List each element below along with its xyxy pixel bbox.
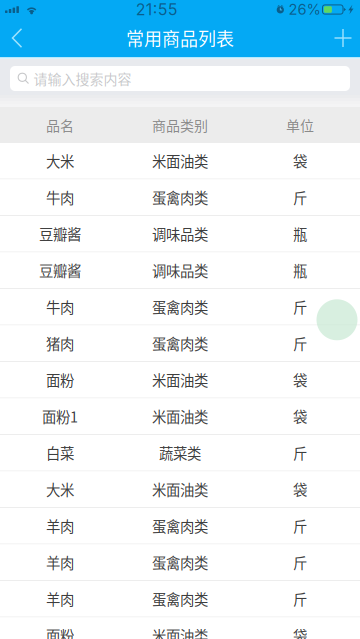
staticText: 蔬菜类: [159, 442, 201, 463]
staticText: 牛肉: [46, 187, 74, 208]
button[interactable]: 请输入搜索内容: [0, 59, 360, 95]
staticText: 蛋禽肉类: [152, 515, 208, 536]
staticText: 袋: [293, 369, 307, 390]
button[interactable]: 添加: [316, 19, 360, 56]
staticText: 袋: [293, 406, 307, 427]
staticText: 斤: [293, 552, 307, 573]
staticText: 商品类别: [152, 115, 208, 135]
button[interactable]: 羊肉: [0, 544, 360, 581]
staticText: 面粉: [46, 369, 74, 390]
staticText: 斤: [293, 296, 307, 317]
staticText: 米面油类: [152, 625, 208, 639]
button[interactable]: 白菜: [0, 435, 360, 471]
staticText: 袋: [293, 625, 307, 639]
staticText: 面粉1: [42, 406, 78, 427]
staticText: 斤: [293, 515, 307, 536]
staticText: 豆瓣酱: [39, 260, 81, 281]
staticText: 蛋禽肉类: [152, 296, 208, 317]
staticText: 蛋禽肉类: [152, 588, 208, 609]
staticText: 蛋禽肉类: [152, 333, 208, 354]
staticText: 面粉: [46, 625, 74, 639]
button[interactable]: 豆瓣酱: [0, 252, 360, 289]
button[interactable]: 返回: [0, 19, 40, 57]
staticText: 斤: [293, 333, 307, 354]
staticText: 26%: [288, 1, 320, 18]
staticText: 21:55: [136, 0, 178, 19]
staticText: 斤: [293, 187, 307, 208]
staticText: 瓶: [293, 260, 307, 281]
staticText: 调味品类: [152, 223, 208, 244]
button[interactable]: 面粉: [0, 362, 360, 398]
staticText: 米面油类: [152, 150, 208, 171]
staticText: 米面油类: [152, 369, 208, 390]
staticText: 牛肉: [46, 296, 74, 317]
button[interactable]: 牛肉: [0, 179, 360, 216]
staticText: 瓶: [293, 223, 307, 244]
button[interactable]: 面粉1: [0, 398, 360, 435]
staticText: 斤: [293, 442, 307, 463]
button[interactable]: 悬浮操作按钮: [316, 299, 357, 340]
button[interactable]: 大米: [0, 143, 360, 179]
button[interactable]: 豆瓣酱: [0, 216, 360, 252]
staticText: 单位: [286, 115, 314, 135]
staticText: 猪肉: [46, 333, 74, 354]
staticText: 品名: [46, 115, 74, 135]
staticText: 请输入搜索内容: [33, 68, 131, 89]
staticText: 米面油类: [152, 406, 208, 427]
staticText: 羊肉: [46, 515, 74, 536]
button[interactable]: 羊肉: [0, 508, 360, 544]
staticText: 斤: [293, 588, 307, 609]
button[interactable]: 猪肉: [0, 325, 360, 362]
staticText: 蛋禽肉类: [152, 187, 208, 208]
staticText: 豆瓣酱: [39, 223, 81, 244]
staticText: 羊肉: [46, 552, 74, 573]
staticText: 大米: [46, 150, 74, 171]
staticText: 白菜: [46, 442, 74, 463]
staticText: 袋: [293, 479, 307, 500]
staticText: 调味品类: [152, 260, 208, 281]
button[interactable]: 羊肉: [0, 581, 360, 617]
button[interactable]: 面粉: [0, 617, 360, 639]
staticText: 羊肉: [46, 588, 74, 609]
button[interactable]: 牛肉: [0, 289, 360, 325]
staticText: 米面油类: [152, 479, 208, 500]
staticText: 大米: [46, 479, 74, 500]
staticText: 蛋禽肉类: [152, 552, 208, 573]
staticText: 常用商品列表: [126, 25, 234, 51]
staticText: 袋: [293, 150, 307, 171]
button[interactable]: 大米: [0, 471, 360, 508]
